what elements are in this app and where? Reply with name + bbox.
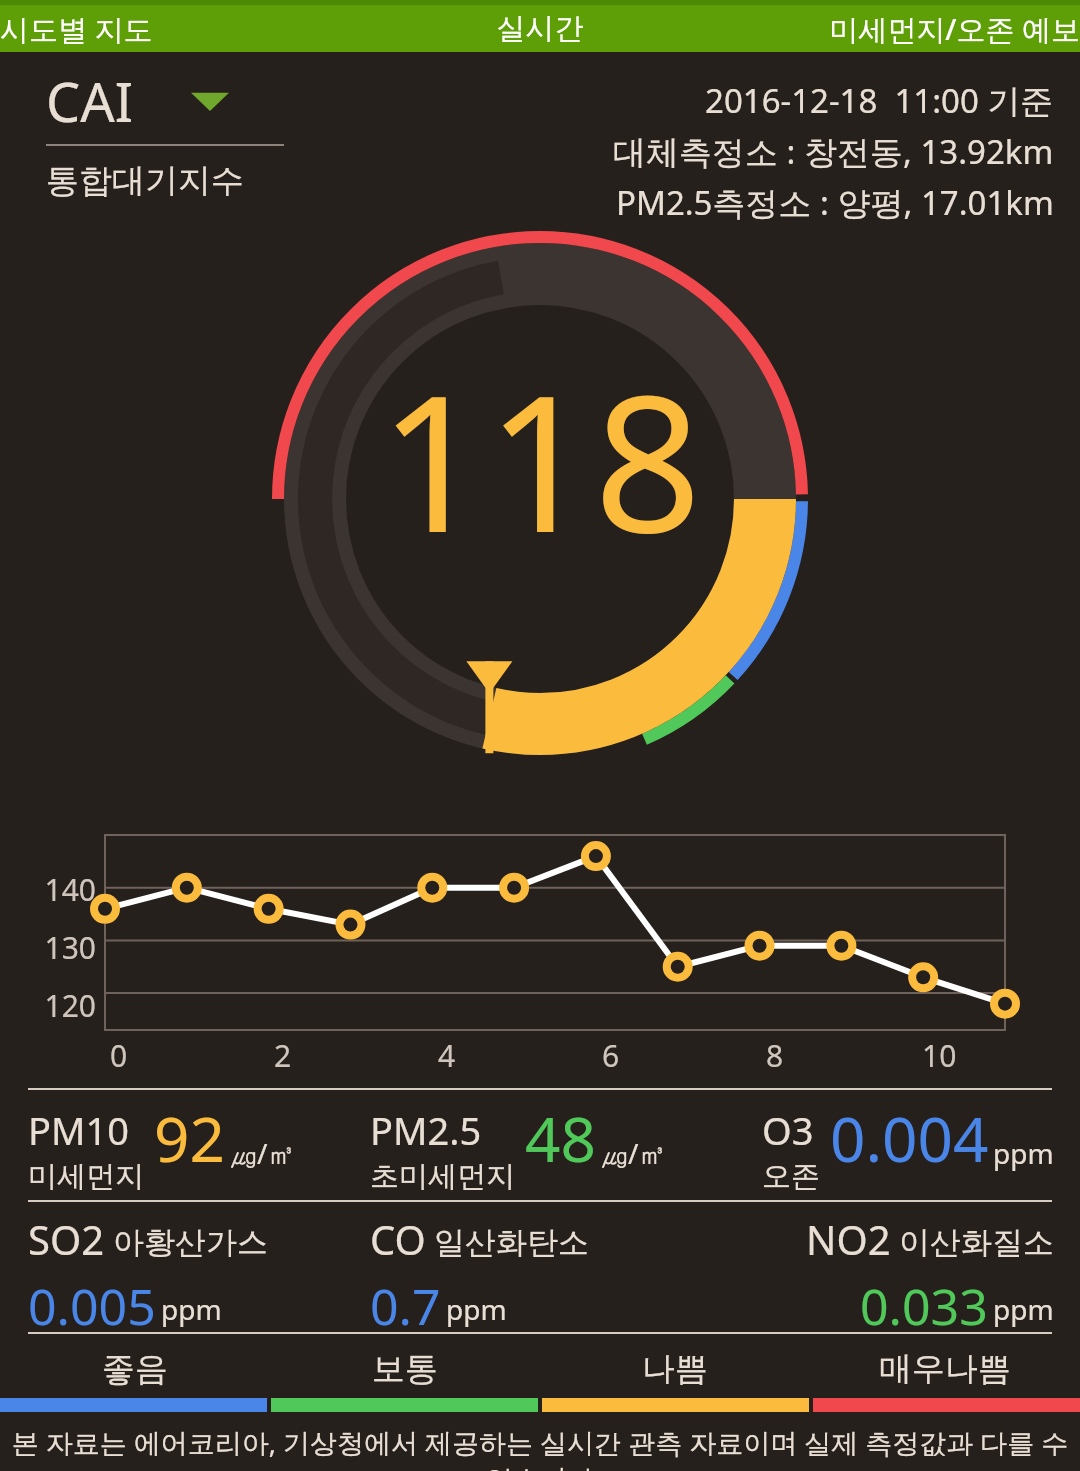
- button[interactable]: CAI: [28, 64, 298, 202]
- staticText: 시도별 지도: [0, 9, 360, 49]
- staticText: 오존: [762, 1158, 820, 1195]
- staticText: 118: [379, 331, 702, 587]
- staticText: 120: [0, 985, 96, 1026]
- staticText: CO: [370, 1212, 426, 1266]
- staticText: 매우나쁨: [879, 1348, 1011, 1390]
- staticText: 140: [0, 869, 96, 910]
- staticText: 2016-12-18 11:00 기준: [705, 78, 1054, 123]
- staticText: 48: [525, 1096, 596, 1178]
- staticText: 좋음: [102, 1348, 168, 1390]
- staticText: 아황산가스: [113, 1223, 268, 1262]
- button[interactable]: 매우나쁨: [810, 1348, 1080, 1390]
- staticText: 초미세먼지: [370, 1158, 515, 1195]
- staticText: 본 자료는 에어코리아, 기상청에서 제공하는 실시간 관측 자료이며 실제 측…: [0, 1424, 1080, 1471]
- staticText: PM2.5측정소 : 양평, 17.01km: [616, 180, 1054, 225]
- staticText: 대체측정소 : 창전동, 13.92km: [613, 129, 1054, 174]
- staticText: PM10: [28, 1104, 129, 1156]
- staticText: 0: [110, 1035, 128, 1076]
- staticText: 나쁨: [642, 1348, 708, 1390]
- staticText: 8: [766, 1035, 784, 1076]
- staticText: ㎍/㎥: [600, 1134, 667, 1172]
- staticText: 92: [154, 1096, 225, 1178]
- staticText: SO2: [28, 1212, 105, 1266]
- staticText: 0.033: [860, 1272, 988, 1332]
- button[interactable]: SO2: [28, 1212, 370, 1332]
- staticText: ppm: [993, 1134, 1054, 1172]
- button[interactable]: CO: [370, 1212, 712, 1332]
- button[interactable]: 나쁨: [540, 1348, 810, 1390]
- staticText: 4: [438, 1035, 456, 1076]
- button[interactable]: O3: [712, 1096, 1054, 1200]
- staticText: 2: [274, 1035, 292, 1076]
- button[interactable]: PM10: [28, 1096, 370, 1200]
- button[interactable]: PM2.5: [370, 1096, 712, 1200]
- staticText: 보통: [372, 1348, 438, 1390]
- staticText: 130: [0, 927, 96, 968]
- staticText: 0.7: [370, 1272, 441, 1332]
- staticText: ppm: [993, 1290, 1054, 1328]
- button[interactable]: 실시간: [360, 5, 720, 52]
- staticText: O3: [762, 1104, 814, 1156]
- staticText: ㎍/㎥: [229, 1134, 296, 1172]
- staticText: 미세먼지/오존 예보: [720, 9, 1080, 49]
- staticText: 10: [922, 1035, 957, 1076]
- staticText: 0.004: [830, 1096, 989, 1178]
- button[interactable]: 좋음: [0, 1348, 270, 1390]
- staticText: ppm: [446, 1290, 507, 1328]
- staticText: 0.005: [28, 1272, 156, 1332]
- staticText: 이산화질소: [899, 1223, 1054, 1262]
- button[interactable]: 시도별 지도: [0, 5, 360, 52]
- staticText: 6: [602, 1035, 620, 1076]
- button[interactable]: NO2: [712, 1212, 1054, 1332]
- staticText: 일산화탄소: [434, 1223, 589, 1262]
- button[interactable]: 보통: [270, 1348, 540, 1390]
- staticText: 실시간: [360, 10, 720, 47]
- staticText: NO2: [806, 1212, 891, 1266]
- staticText: CAI: [46, 64, 133, 138]
- staticText: 통합대기지수: [46, 160, 244, 202]
- staticText: PM2.5: [370, 1104, 482, 1156]
- staticText: 미세먼지: [28, 1158, 144, 1195]
- other: 통합대기지수 118: [0, 227, 1080, 817]
- staticText: ppm: [161, 1290, 222, 1328]
- button[interactable]: 미세먼지/오존 예보: [720, 5, 1080, 52]
